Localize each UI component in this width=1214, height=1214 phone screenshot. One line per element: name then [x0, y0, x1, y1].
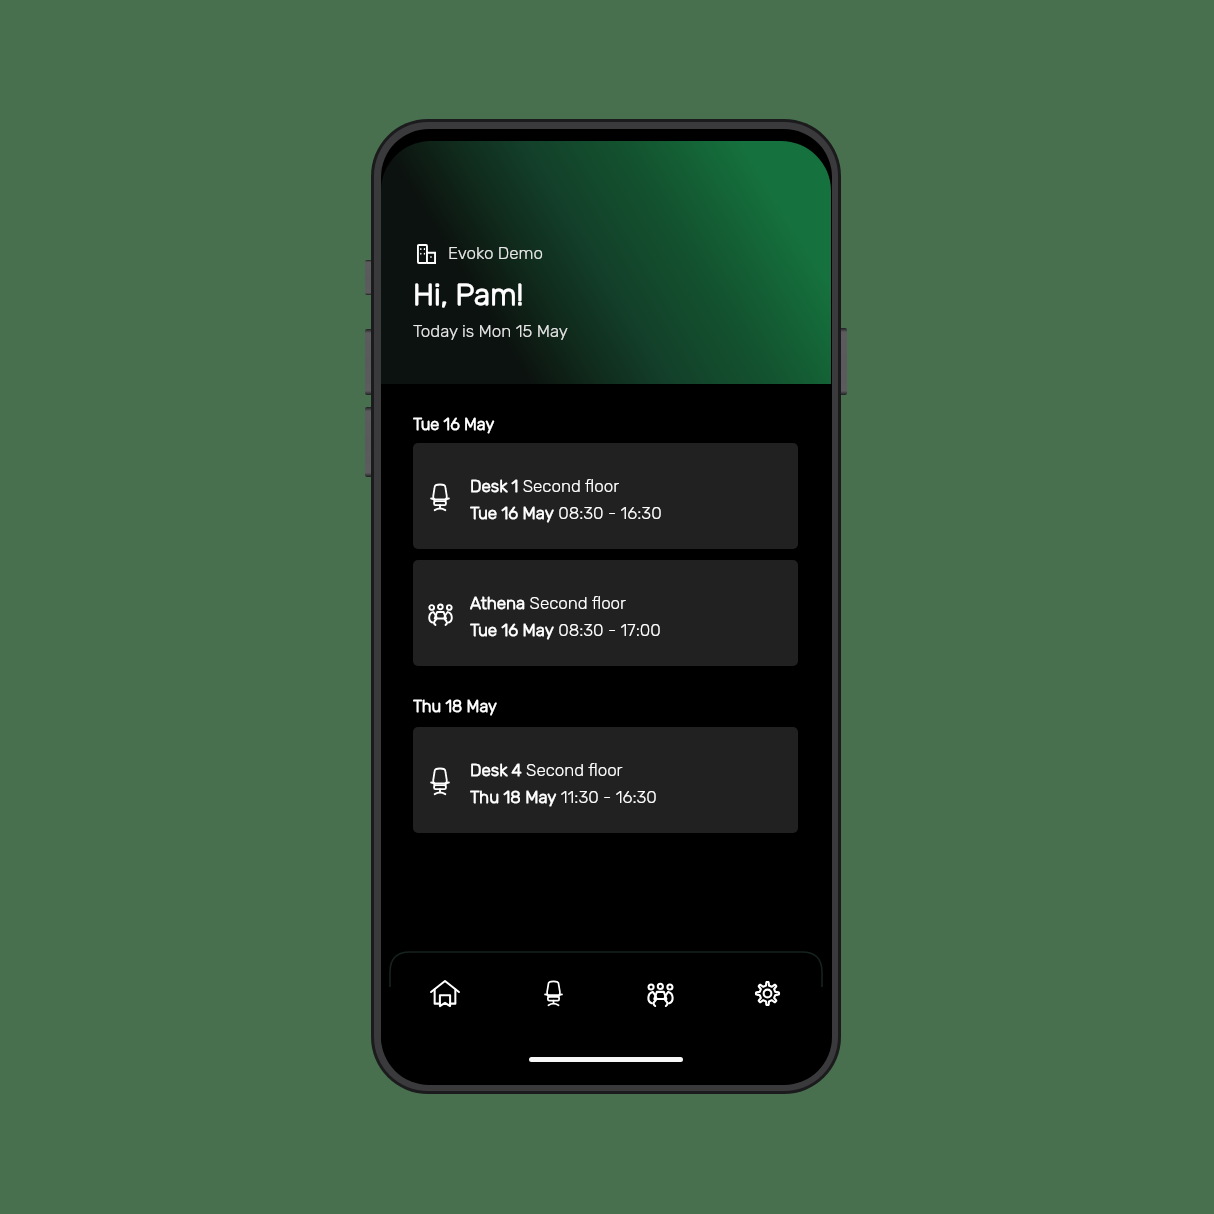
button[interactable]: Rooms: [607, 959, 713, 1027]
button[interactable]: Desk 4 Second floor: [413, 727, 798, 833]
staticText: Tue 16 May 08:30 - 17:00: [470, 620, 661, 640]
staticText: Thu 18 May 11:30 - 16:30: [470, 787, 657, 807]
staticText: Tue 16 May: [413, 415, 495, 435]
staticText: Desk 4 Second floor: [470, 760, 623, 780]
staticText: Tue 16 May 08:30 - 16:30: [470, 503, 662, 523]
staticText: Desk 1 Second floor: [470, 476, 620, 496]
button[interactable]: Settings: [714, 959, 820, 1027]
staticText: Today is Mon 15 May: [413, 321, 568, 341]
staticText: Athena Second floor: [470, 593, 627, 613]
staticText: Thu 18 May: [413, 697, 497, 717]
button[interactable]: Home: [392, 959, 498, 1027]
button[interactable]: Athena Second floor: [413, 560, 798, 666]
button[interactable]: Desks: [500, 959, 606, 1027]
staticText: Evoko Demo: [448, 243, 543, 263]
staticText: Hi, Pam!: [413, 277, 524, 313]
button[interactable]: Desk 1 Second floor: [413, 443, 798, 549]
